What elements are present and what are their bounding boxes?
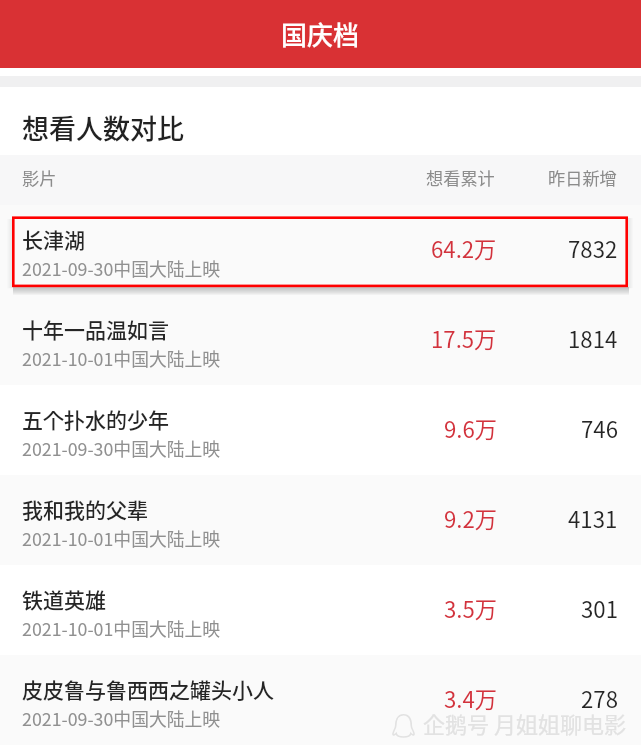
staticText: 昨日新增 <box>548 165 617 190</box>
staticText: 想看人数对比 <box>22 108 184 147</box>
button[interactable]: 皮皮鲁与鲁西西之罐头小人 <box>0 655 641 745</box>
staticText: 企鹅号 月姐姐聊电影 <box>423 707 626 739</box>
staticText: 国庆档 <box>281 15 360 53</box>
button[interactable]: 五个扑水的少年 <box>0 385 641 475</box>
staticText: 9.6万 <box>444 412 497 444</box>
other: 企鹅号 <box>392 714 415 739</box>
staticText: 3.5万 <box>444 592 497 624</box>
staticText: 64.2万 <box>431 232 497 264</box>
staticText: 影片 <box>22 165 57 190</box>
button[interactable]: 长津湖 <box>0 205 641 295</box>
staticText: 3.4万 <box>444 682 497 714</box>
staticText: 2021-10-01中国大陆上映 <box>22 615 221 641</box>
staticText: 2021-10-01中国大陆上映 <box>22 345 221 371</box>
button[interactable]: 我和我的父辈 <box>0 475 641 565</box>
button[interactable]: 铁道英雄 <box>0 565 641 655</box>
staticText: 想看累计 <box>426 165 495 190</box>
staticText: 皮皮鲁与鲁西西之罐头小人 <box>22 674 274 704</box>
staticText: 7832 <box>568 232 618 264</box>
staticText: 2021-09-30中国大陆上映 <box>22 435 221 461</box>
staticText: 2021-09-30中国大陆上映 <box>22 255 221 281</box>
staticText: 746 <box>581 412 618 444</box>
button[interactable]: 十年一品温如言 <box>0 295 641 385</box>
staticText: 我和我的父辈 <box>22 494 148 524</box>
staticText: 17.5万 <box>431 322 497 354</box>
staticText: 十年一品温如言 <box>22 314 169 344</box>
staticText: 长津湖 <box>22 224 85 254</box>
staticText: 2021-09-30中国大陆上映 <box>22 705 221 731</box>
staticText: 278 <box>581 682 618 714</box>
staticText: 五个扑水的少年 <box>22 404 169 434</box>
button[interactable]: 国庆档 <box>0 0 641 68</box>
staticText: 301 <box>581 592 618 624</box>
staticText: 2021-10-01中国大陆上映 <box>22 525 221 551</box>
staticText: 1814 <box>568 322 618 354</box>
staticText: 4131 <box>568 502 618 534</box>
staticText: 铁道英雄 <box>22 584 106 614</box>
staticText: 9.2万 <box>444 502 497 534</box>
